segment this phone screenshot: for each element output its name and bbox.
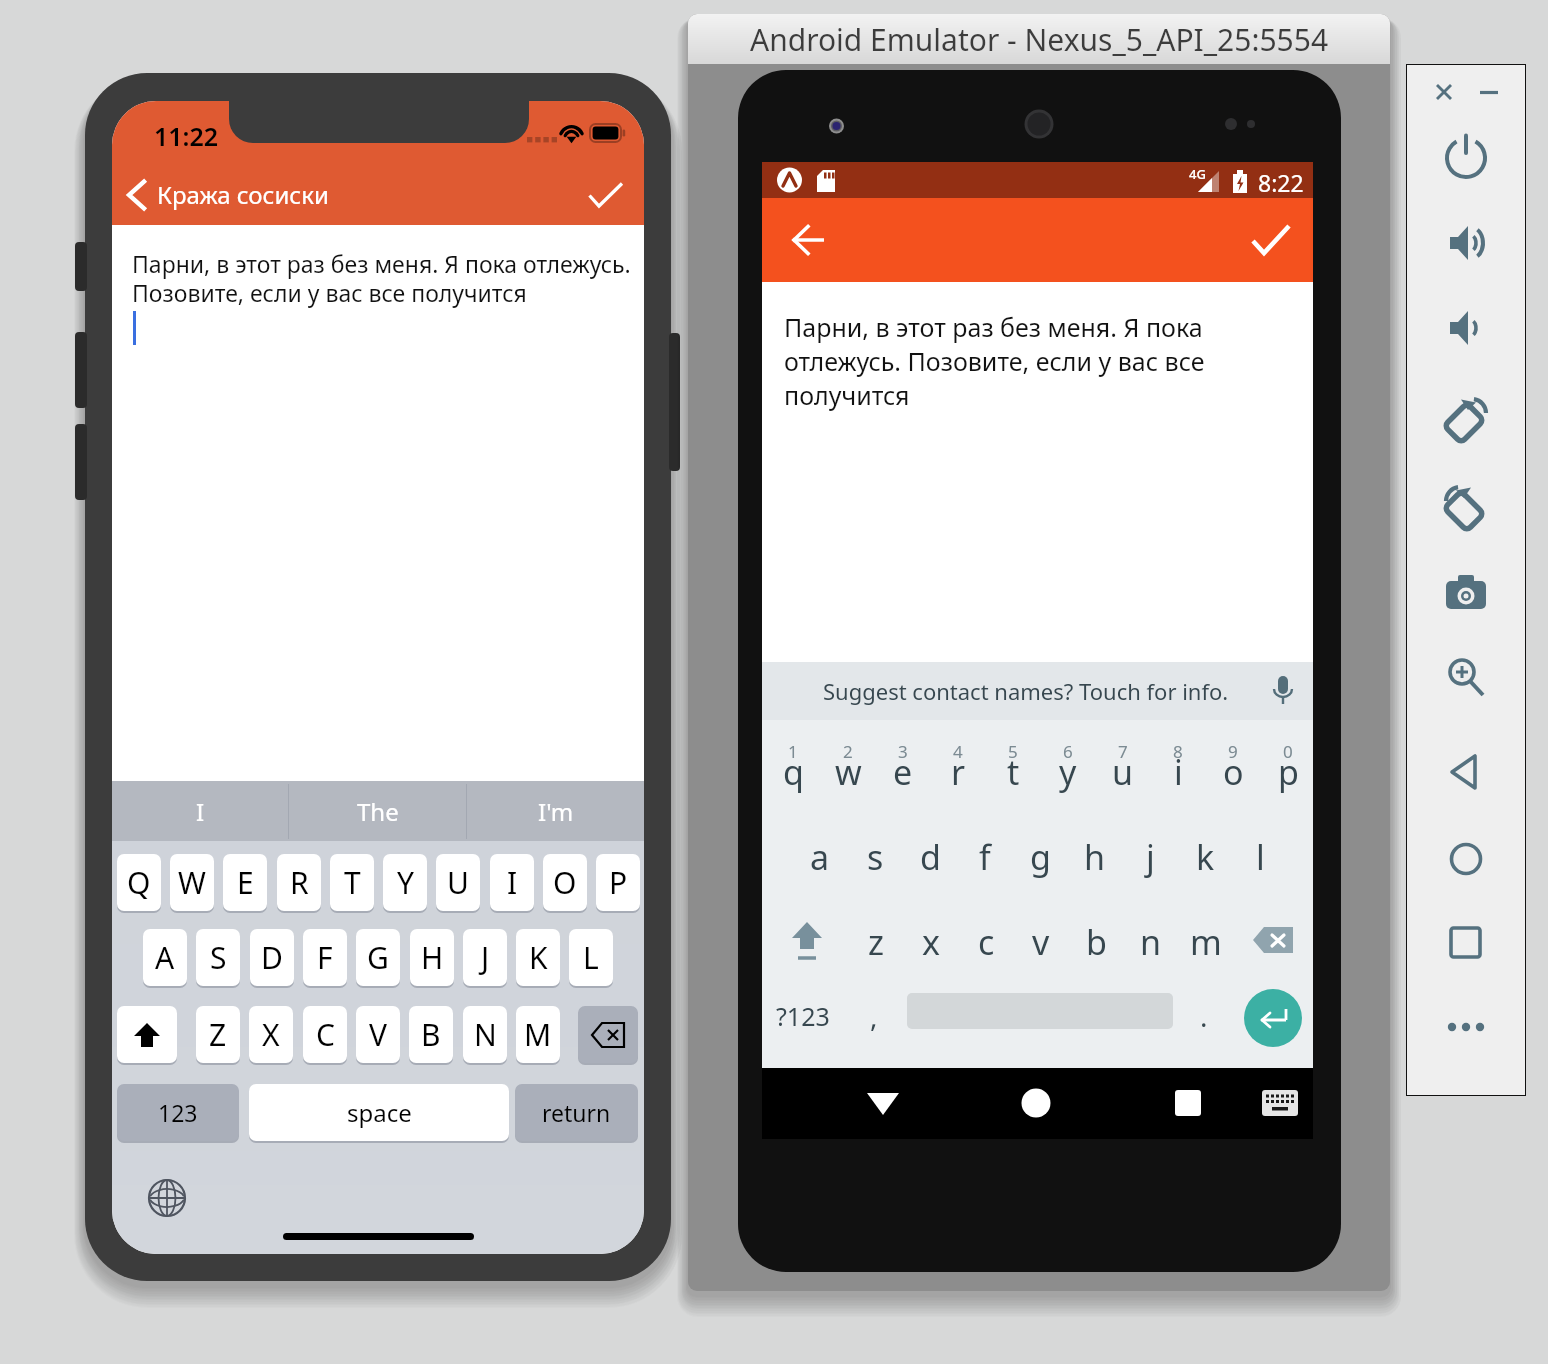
staticText: X [262,1014,280,1055]
button[interactable]: I [490,854,534,911]
button[interactable]: Home [996,1078,1076,1128]
button[interactable]: s [848,827,902,887]
button[interactable]: i [1151,742,1205,802]
button[interactable]: R [277,854,321,911]
button[interactable]: q [766,742,820,802]
button[interactable]: Voice input [1264,672,1302,710]
button[interactable]: y [1041,742,1095,802]
staticText: 4G [1189,165,1206,183]
button[interactable]: r [931,742,985,802]
button[interactable]: Enter [1244,989,1302,1047]
button[interactable]: U [436,854,480,911]
button[interactable]: X [249,1006,293,1063]
button[interactable]: Done [1243,212,1299,268]
button[interactable]: Back [1441,747,1491,797]
button[interactable]: Keyboard [1245,1078,1315,1128]
button[interactable]: L [569,929,613,986]
button[interactable]: O [543,854,587,911]
button[interactable]: Suggest contact names? Touch for info. [762,662,1313,720]
button[interactable]: Y [383,854,427,911]
button[interactable]: Zoom [1441,652,1491,702]
button[interactable]: z [849,912,903,972]
button[interactable]: Backspace [1246,914,1302,966]
button[interactable]: I'm [467,781,644,841]
button[interactable]: H [410,929,454,986]
button[interactable]: K [516,929,560,986]
button[interactable]: k [1178,827,1232,887]
button[interactable]: E [223,854,267,911]
button[interactable]: g [1013,827,1067,887]
button[interactable]: Rotate left [1441,394,1491,444]
staticText: 7 [1118,740,1128,762]
button[interactable]: x [904,912,958,972]
button[interactable]: b [1069,912,1123,972]
button[interactable]: Rotate right [1441,482,1491,532]
button[interactable]: w [821,742,875,802]
button[interactable]: M [516,1006,560,1063]
button[interactable]: P [596,854,640,911]
button[interactable]: C [303,1006,347,1063]
button[interactable]: , [850,988,898,1044]
button[interactable]: t [986,742,1040,802]
button[interactable]: l [1233,827,1287,887]
button[interactable]: A [143,929,187,986]
button[interactable]: I [112,781,288,841]
button[interactable]: p [1261,742,1315,802]
button[interactable]: Switch keyboard [148,1179,186,1217]
button[interactable]: Volume up [1441,218,1491,268]
button[interactable]: e [876,742,930,802]
button[interactable]: m [1179,912,1233,972]
button[interactable]: Close [1428,76,1460,108]
button[interactable]: Shift [776,912,838,972]
button[interactable]: f [958,827,1012,887]
button[interactable]: J [463,929,507,986]
button[interactable]: v [1014,912,1068,972]
button[interactable]: W [170,854,214,911]
button[interactable]: Q [117,854,161,911]
button[interactable]: a [793,827,847,887]
button[interactable]: ?123 [767,988,839,1044]
button[interactable]: Volume down [1441,303,1491,353]
button[interactable]: return [515,1084,638,1141]
button[interactable]: Кража сосиски [122,165,329,225]
button[interactable]: d [903,827,957,887]
button[interactable]: Recents [1148,1078,1228,1128]
button[interactable] [578,1006,638,1063]
staticText: z [868,919,884,965]
button[interactable]: Overview [1441,918,1491,968]
button[interactable]: More [1441,1002,1491,1052]
button[interactable]: j [1123,827,1177,887]
button[interactable]: Back [781,212,837,268]
button[interactable]: N [463,1006,507,1063]
button[interactable]: Minimize [1473,76,1505,108]
button[interactable]: Home [1441,834,1491,884]
staticText: v [1032,919,1050,965]
button[interactable]: o [1206,742,1260,802]
button[interactable]: V [356,1006,400,1063]
button[interactable]: Done [578,165,634,225]
button[interactable]: Back [843,1078,923,1128]
staticText: ?123 [776,999,830,1033]
button[interactable]: n [1124,912,1178,972]
button[interactable]: Screenshot [1441,567,1491,617]
button[interactable] [117,1006,177,1063]
button[interactable]: B [409,1006,453,1063]
button[interactable]: . [1182,988,1226,1044]
button[interactable]: space [249,1084,509,1141]
staticText: G [367,937,389,978]
button[interactable]: 123 [117,1084,239,1141]
button[interactable]: The [289,781,466,841]
button[interactable]: u [1096,742,1150,802]
button[interactable]: h [1068,827,1122,887]
button[interactable]: S [196,929,240,986]
button[interactable]: c [959,912,1013,972]
button[interactable]: Z [196,1006,240,1063]
button[interactable]: G [356,929,400,986]
button[interactable]: F [303,929,347,986]
staticText: 1 [788,740,798,762]
staticText: l [1256,834,1265,880]
button[interactable]: Power [1441,131,1491,181]
button[interactable]: T [330,854,374,911]
button[interactable]: D [250,929,294,986]
